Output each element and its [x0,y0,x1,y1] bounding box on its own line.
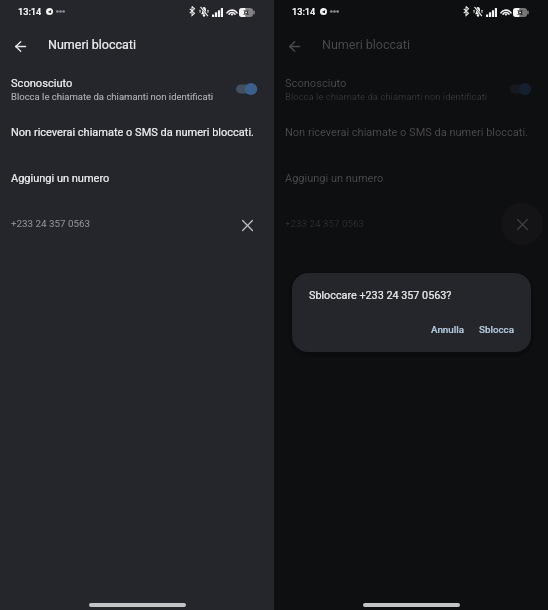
staticText: Non riceverai chiamate o SMS da numeri b… [285,126,528,139]
button[interactable]: +233 24 357 0563 [0,206,274,243]
staticText: Aggiungi un numero [285,172,384,185]
staticText: Non riceverai chiamate o SMS da numeri b… [11,126,254,139]
button[interactable]: Sconosciuto toggle [233,75,261,103]
staticText: Blocca le chiamate da chiamanti non iden… [11,91,214,102]
button[interactable]: Back [274,26,314,66]
staticText: Annulla [431,324,465,335]
button[interactable]: Aggiungi un numero [274,162,548,194]
button[interactable]: Annulla [424,320,472,339]
button[interactable]: Sblocca [472,320,522,339]
staticText: Sconosciuto [285,77,347,90]
button[interactable]: Sconosciuto toggle [507,75,535,103]
staticText: Blocca le chiamate da chiamanti non iden… [285,91,488,102]
staticText: +233 24 357 0563 [11,218,90,229]
button[interactable]: Unblock number [501,203,543,245]
staticText: +233 24 357 0563 [285,218,364,229]
button[interactable]: +233 24 357 0563 [274,206,548,243]
button[interactable]: Sconosciuto [274,70,548,108]
staticText: 13:14 [292,6,316,17]
staticText: Sconosciuto [11,77,73,90]
staticText: Sblocca [479,324,515,335]
button[interactable]: Unblock number [233,211,261,239]
staticText: 13:14 [18,6,42,17]
button[interactable]: Sconosciuto [0,70,274,108]
button[interactable]: Back [0,26,40,66]
staticText: Numeri bloccati [48,37,136,52]
staticText: Sbloccare +233 24 357 0563? [309,289,452,302]
button[interactable]: Aggiungi un numero [0,162,274,194]
staticText: Numeri bloccati [322,37,410,52]
staticText: Aggiungi un numero [11,172,110,185]
